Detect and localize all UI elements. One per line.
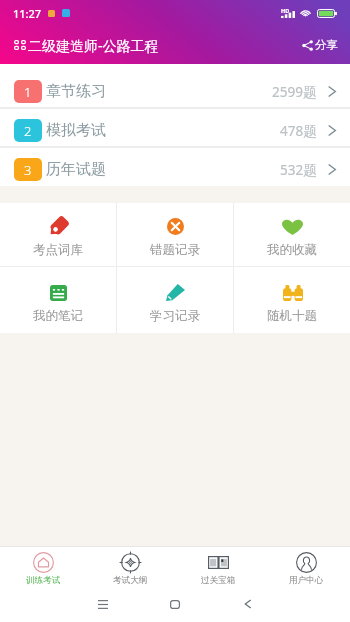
button[interactable]: 过关宝箱: [174, 547, 262, 588]
staticText: 章节练习: [46, 82, 106, 101]
staticText: 考试大纲: [113, 575, 148, 586]
staticText: 分享: [315, 38, 338, 52]
staticText: HD: [281, 7, 290, 14]
staticText: 考点词库: [33, 242, 83, 258]
staticText: 随机十题: [267, 308, 317, 324]
button[interactable]: 随机十题: [234, 267, 350, 333]
staticText: 过关宝箱: [201, 575, 236, 586]
staticText: 学习记录: [150, 308, 200, 324]
button[interactable]: 考点词库: [0, 203, 116, 266]
button[interactable]: 3: [0, 148, 350, 185]
button[interactable]: 分享: [302, 34, 338, 56]
staticText: 我的笔记: [33, 308, 83, 324]
staticText: 训练考试: [26, 575, 61, 586]
button[interactable]: Menu: [14, 40, 26, 50]
staticText: 11:27: [13, 6, 42, 21]
button[interactable]: 学习记录: [117, 267, 233, 333]
staticText: 模拟考试: [46, 121, 106, 140]
staticText: 我的收藏: [267, 242, 317, 258]
button[interactable]: 考试大纲: [87, 547, 174, 588]
staticText: 二级建造师-公路工程: [28, 36, 159, 55]
button[interactable]: 错题记录: [117, 203, 233, 266]
staticText: 1: [24, 83, 32, 101]
staticText: 2599题: [272, 83, 317, 101]
staticText: 2: [24, 122, 32, 140]
staticText: 478题: [280, 122, 317, 140]
button[interactable]: 训练考试: [0, 547, 87, 588]
button[interactable]: 2: [0, 109, 350, 146]
staticText: 历年试题: [46, 160, 106, 179]
button[interactable]: 用户中心: [262, 547, 350, 588]
staticText: 用户中心: [289, 575, 324, 586]
staticText: 532题: [280, 161, 317, 179]
button[interactable]: 1: [0, 70, 350, 107]
staticText: 错题记录: [150, 242, 200, 258]
staticText: 3: [24, 161, 32, 179]
button[interactable]: 我的收藏: [234, 203, 350, 266]
button[interactable]: 我的笔记: [0, 267, 116, 333]
